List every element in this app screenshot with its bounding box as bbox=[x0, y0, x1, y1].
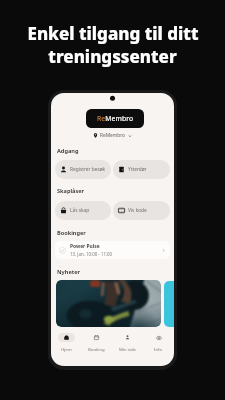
button[interactable]: ReMembro bbox=[86, 109, 144, 128]
staticText: Enkel tilgang til ditt bbox=[27, 22, 199, 45]
staticText: Skaplåser bbox=[57, 187, 85, 195]
staticText: Nyheter bbox=[57, 268, 80, 276]
button[interactable]: Registrer besøk bbox=[55, 160, 111, 179]
button[interactable]: Min side bbox=[112, 333, 143, 353]
staticText: Lås skap bbox=[70, 207, 90, 214]
staticText: treningssenter bbox=[48, 45, 177, 68]
button[interactable]: Power Pulse bbox=[55, 241, 170, 259]
staticText: 13. jan. 10:00 - 11:00 bbox=[70, 251, 113, 257]
staticText: Info bbox=[154, 346, 163, 352]
button[interactable]: Ytterdør bbox=[113, 160, 170, 179]
staticText: Adgang bbox=[57, 147, 79, 155]
staticText: ReMembro bbox=[100, 132, 125, 139]
button[interactable]: Vis kode bbox=[113, 201, 170, 220]
button[interactable]: Info bbox=[143, 333, 174, 353]
staticText: Min side bbox=[119, 346, 137, 352]
button[interactable]: ReMembro bbox=[51, 132, 174, 139]
staticText: Ytterdør bbox=[128, 166, 147, 173]
button[interactable]: Booking bbox=[81, 333, 112, 353]
button[interactable]: Hjem bbox=[51, 333, 81, 353]
staticText: Registrer besøk bbox=[70, 166, 106, 173]
button[interactable]: Lås skap bbox=[55, 201, 111, 220]
button[interactable] bbox=[56, 280, 161, 327]
button[interactable] bbox=[164, 281, 174, 327]
staticText: Vis kode bbox=[128, 207, 147, 214]
staticText: Hjem bbox=[61, 346, 72, 352]
staticText: Booking bbox=[88, 346, 105, 352]
staticText: Bookinger bbox=[57, 229, 86, 237]
staticText: ReMembro bbox=[97, 114, 134, 123]
staticText: Power Pulse bbox=[70, 243, 100, 250]
